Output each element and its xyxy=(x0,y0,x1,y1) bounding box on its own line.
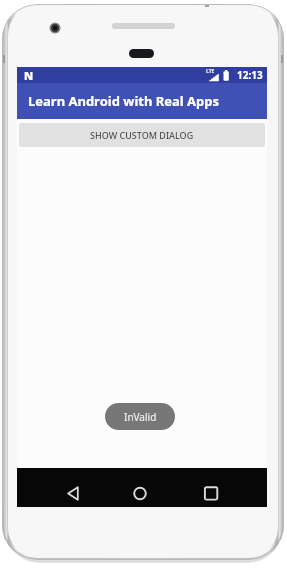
staticText: N xyxy=(24,68,34,83)
button[interactable] xyxy=(130,484,150,503)
staticText: LTE xyxy=(206,68,215,75)
staticText: InValid xyxy=(124,410,157,424)
button[interactable]: SHOW CUSTOM DIALOG xyxy=(19,123,265,147)
staticText: 12:13 xyxy=(237,68,263,82)
staticText: SHOW CUSTOM DIALOG xyxy=(90,129,194,141)
button[interactable] xyxy=(63,484,83,503)
button[interactable] xyxy=(201,484,221,503)
button[interactable]: InValid xyxy=(105,403,175,430)
staticText: Learn Android with Real Apps xyxy=(28,92,220,110)
